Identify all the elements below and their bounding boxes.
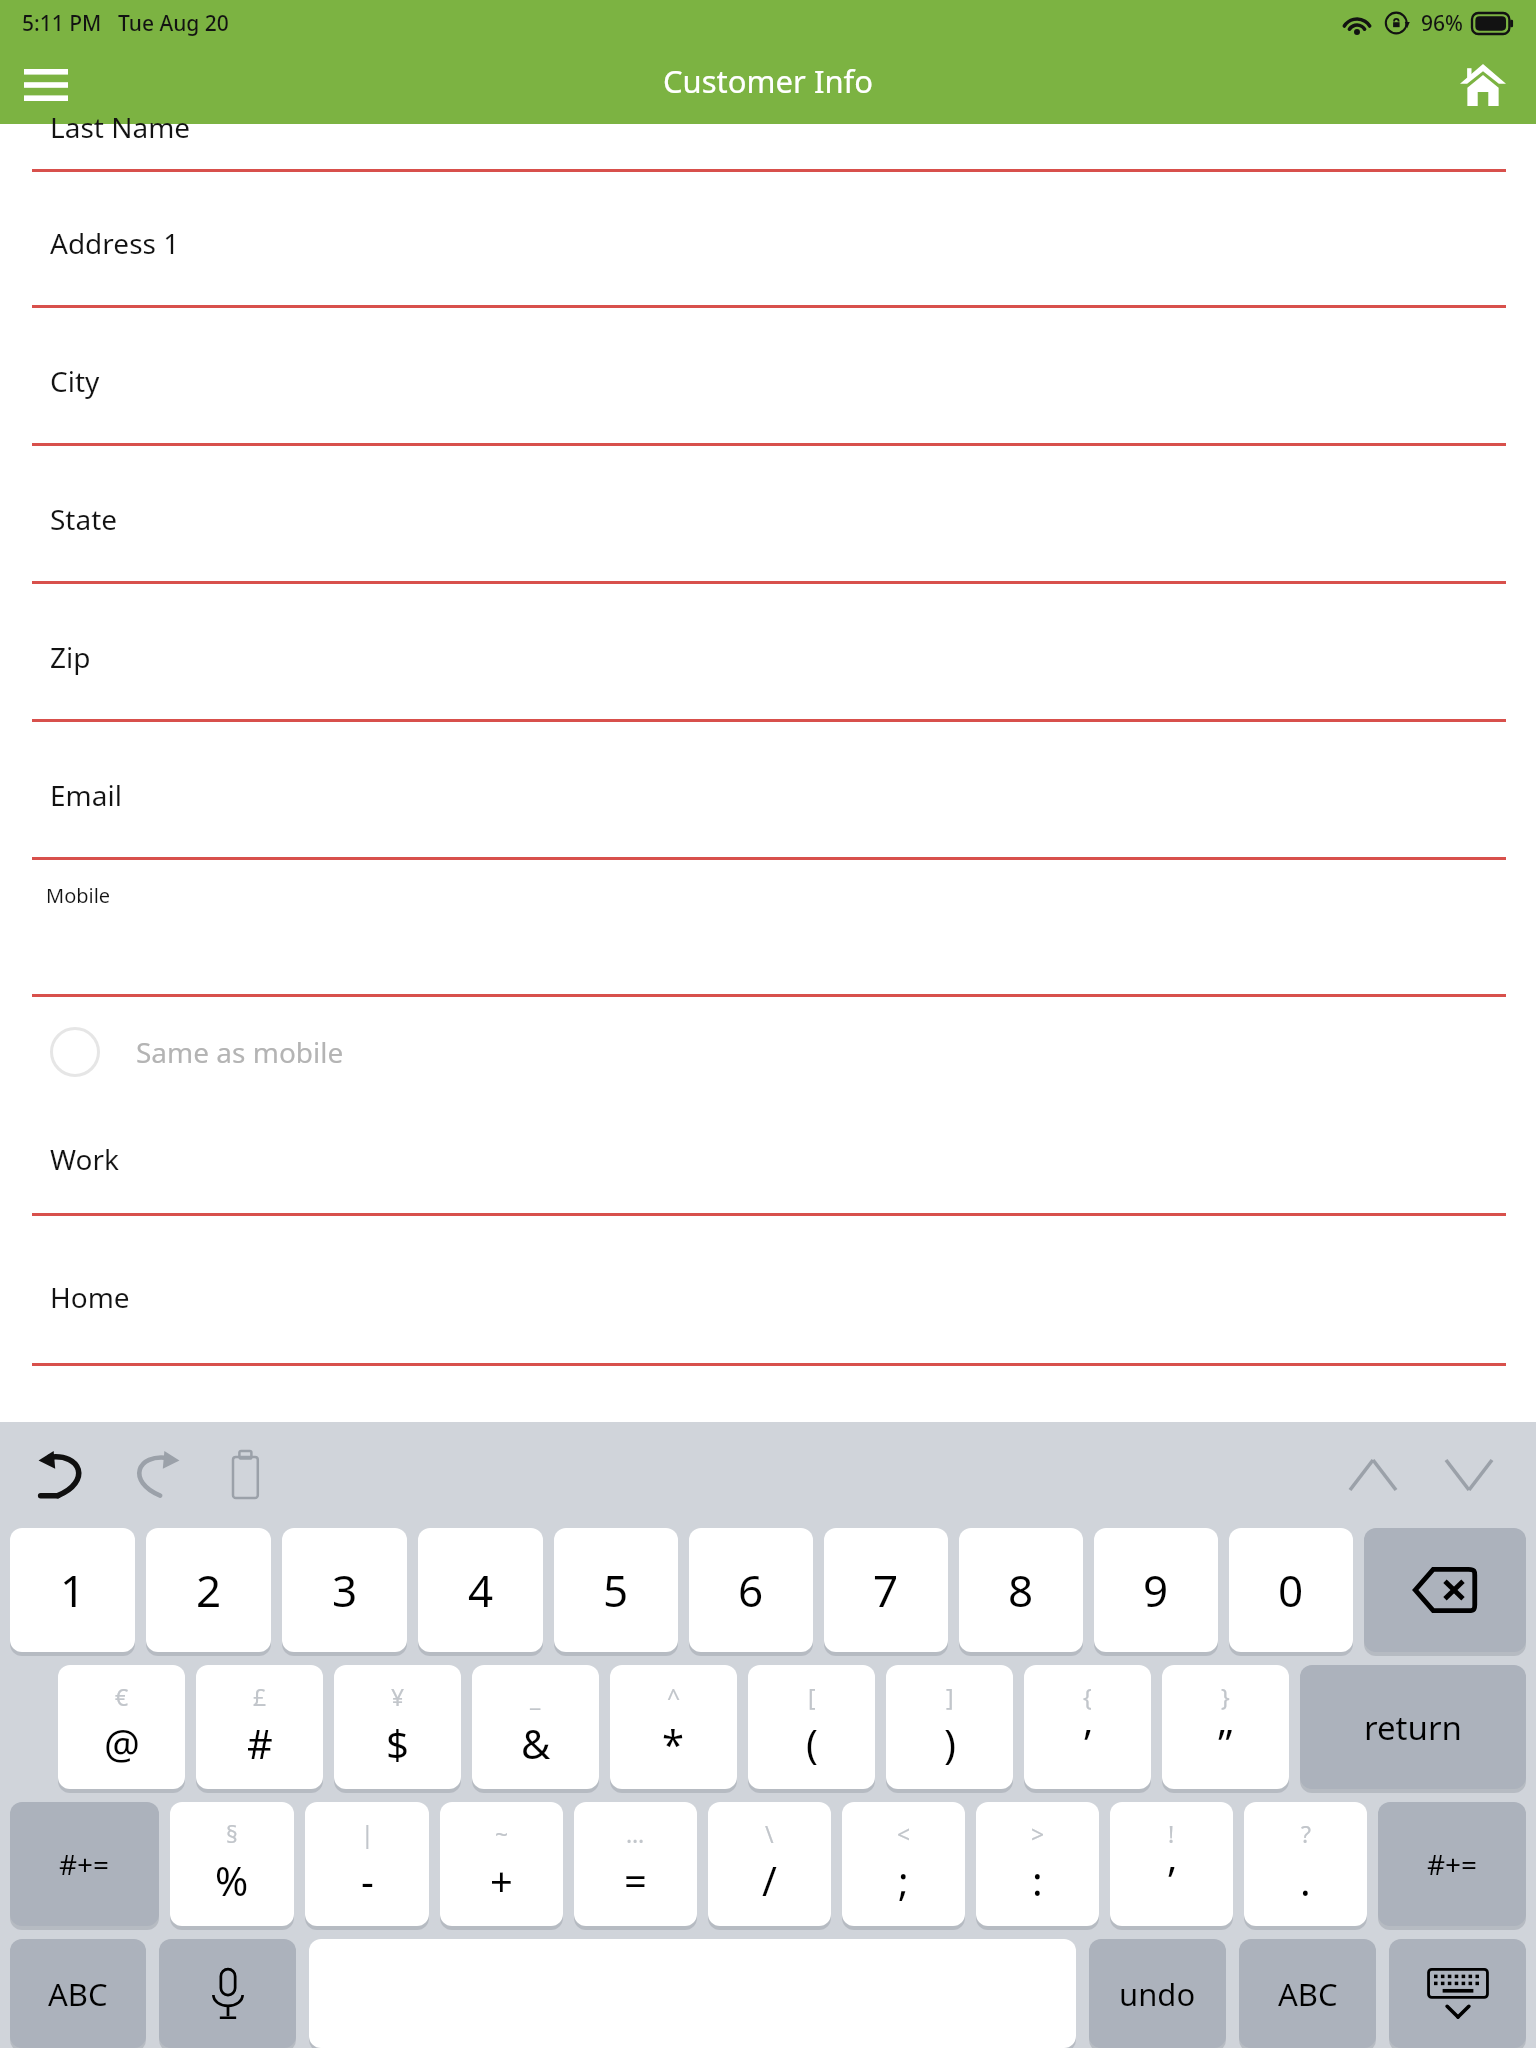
button[interactable] — [0, 860, 1536, 994]
staticText: … — [626, 1818, 645, 1849]
button[interactable]: ~ — [440, 1802, 563, 1926]
staticText: - — [361, 1853, 374, 1907]
staticText: ; — [898, 1853, 909, 1907]
staticText: < — [897, 1818, 911, 1849]
button[interactable]: 7 — [824, 1528, 948, 1652]
button[interactable]: > — [976, 1802, 1099, 1926]
button[interactable] — [0, 172, 1536, 305]
button[interactable]: { — [1024, 1665, 1151, 1789]
button[interactable]: … — [574, 1802, 697, 1926]
button[interactable]: ^ — [610, 1665, 737, 1789]
button[interactable]: ] — [886, 1665, 1013, 1789]
button[interactable]: | — [305, 1802, 429, 1926]
staticText: ABC — [1278, 1973, 1338, 2015]
button[interactable]: _ — [472, 1665, 599, 1789]
button[interactable]: < — [842, 1802, 965, 1926]
staticText: ! — [1168, 1818, 1175, 1849]
staticText: { — [1083, 1681, 1092, 1712]
button[interactable]: Dictation — [159, 1939, 296, 2048]
button[interactable]: ¥ — [334, 1665, 461, 1789]
button[interactable]: #+= — [10, 1802, 159, 1926]
button[interactable]: Redo — [122, 1442, 188, 1508]
staticText: : — [1032, 1853, 1043, 1907]
button[interactable]: return — [1300, 1665, 1526, 1789]
button[interactable]: #+= — [1378, 1802, 1526, 1926]
staticText: Home — [50, 1278, 130, 1316]
staticText: | — [361, 1818, 374, 1849]
button[interactable]: ABC — [1239, 1939, 1376, 2048]
button[interactable]: Hide keyboard — [1389, 1939, 1526, 2048]
button[interactable]: 3 — [282, 1528, 407, 1652]
button[interactable]: £ — [196, 1665, 323, 1789]
button[interactable] — [0, 722, 1536, 857]
staticText: 4 — [468, 1560, 494, 1620]
staticText: 8 — [1008, 1560, 1034, 1620]
staticText: ^ — [667, 1681, 681, 1712]
staticText: € — [115, 1681, 129, 1712]
button[interactable]: ? — [1244, 1802, 1367, 1926]
staticText: > — [1031, 1818, 1045, 1849]
button[interactable]: 2 — [146, 1528, 271, 1652]
button[interactable]: 8 — [959, 1528, 1083, 1652]
button[interactable]: 9 — [1094, 1528, 1218, 1652]
staticText: $ — [386, 1716, 409, 1770]
button[interactable]: \ — [708, 1802, 831, 1926]
staticText: £ — [253, 1681, 267, 1712]
staticText: Address 1 — [50, 224, 180, 262]
button[interactable]: } — [1162, 1665, 1289, 1789]
button[interactable] — [0, 446, 1536, 581]
staticText: _ — [530, 1681, 541, 1712]
button[interactable]: € — [58, 1665, 185, 1789]
button[interactable]: § — [170, 1802, 294, 1926]
staticText: @ — [104, 1716, 140, 1770]
staticText: #+= — [59, 1845, 110, 1883]
button[interactable]: Previous field — [1340, 1442, 1406, 1508]
button[interactable]: Paste — [212, 1442, 278, 1508]
staticText: [ — [808, 1681, 816, 1712]
button[interactable]: Home — [1452, 54, 1514, 116]
staticText: Mobile — [46, 882, 111, 909]
staticText: undo — [1119, 1973, 1196, 2015]
staticText: Customer Info — [663, 60, 873, 102]
button[interactable] — [0, 584, 1536, 719]
staticText: § — [226, 1818, 238, 1849]
button[interactable]: Backspace — [1364, 1528, 1526, 1652]
button[interactable]: 1 — [10, 1528, 135, 1652]
staticText: ) — [944, 1716, 956, 1770]
staticText: # — [247, 1716, 273, 1770]
button[interactable]: 6 — [689, 1528, 813, 1652]
staticText: Last Name — [50, 108, 191, 146]
staticText: ¥ — [391, 1681, 405, 1712]
button[interactable]: 4 — [418, 1528, 543, 1652]
staticText: ABC — [48, 1973, 108, 2015]
staticText: 5 — [603, 1560, 629, 1620]
button[interactable]: Next field — [1436, 1442, 1502, 1508]
button[interactable]: 5 — [554, 1528, 678, 1652]
button[interactable] — [0, 308, 1536, 443]
staticText: return — [1364, 1705, 1462, 1750]
staticText: City — [50, 362, 100, 400]
button[interactable]: Same as mobile — [50, 998, 1536, 1106]
button[interactable] — [0, 1216, 1536, 1363]
staticText: 0 — [1278, 1560, 1304, 1620]
staticText: Same as mobile — [136, 1033, 344, 1071]
button[interactable]: Open navigation menu — [16, 55, 76, 115]
button[interactable]: ! — [1110, 1802, 1233, 1926]
staticText: Zip — [50, 638, 91, 676]
staticText: / — [762, 1853, 777, 1907]
button[interactable]: undo — [1089, 1939, 1226, 2048]
staticText: % — [215, 1853, 249, 1907]
button[interactable]: Undo — [30, 1442, 96, 1508]
button[interactable]: ABC — [10, 1939, 146, 2048]
button[interactable] — [0, 1108, 1536, 1213]
staticText: 96% — [1421, 9, 1463, 38]
staticText: ( — [806, 1716, 818, 1770]
staticText: Email — [50, 776, 122, 814]
button[interactable]: 0 — [1229, 1528, 1353, 1652]
staticText: + — [490, 1853, 513, 1907]
staticText: ] — [946, 1681, 954, 1712]
staticText: #+= — [1427, 1845, 1478, 1883]
staticText: 5:11 PM — [22, 9, 102, 38]
button[interactable]: [ — [748, 1665, 875, 1789]
